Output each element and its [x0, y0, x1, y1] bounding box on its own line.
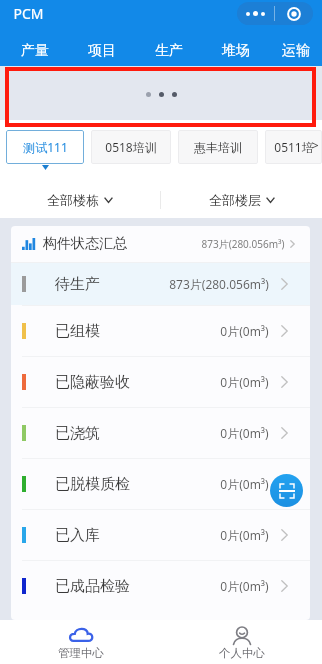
button[interactable]: 管理中心: [0, 620, 161, 664]
button[interactable]: 堆场: [202, 38, 269, 64]
staticText: 项目: [88, 42, 116, 60]
staticText: 个人中心: [219, 646, 265, 660]
staticText: 0片(0m³): [220, 578, 269, 594]
staticText: 0511培: [274, 139, 314, 155]
button[interactable]: 已脱模质检: [11, 459, 310, 509]
staticText: 惠丰培训: [194, 140, 242, 155]
staticText: 0518培训: [105, 139, 157, 155]
staticText: 已成品检验: [55, 577, 130, 596]
staticText: 873片(280.056m³): [201, 237, 285, 251]
staticText: 已入库: [55, 526, 100, 545]
staticText: 全部楼层: [209, 192, 261, 208]
button[interactable]: 已隐蔽验收: [11, 357, 310, 407]
button[interactable]: 个人中心: [161, 620, 322, 664]
button[interactable]: 构件状态汇总: [11, 226, 310, 262]
staticText: 0片(0m³): [220, 374, 269, 390]
button[interactable]: 已组模: [11, 306, 310, 356]
button[interactable]: 已浇筑: [11, 408, 310, 458]
staticText: >: [311, 136, 319, 154]
button[interactable]: 0518培训: [91, 130, 171, 164]
button[interactable]: 产量: [1, 38, 68, 64]
staticText: 已隐蔽验收: [55, 373, 130, 392]
staticText: 0片(0m³): [220, 527, 269, 543]
button[interactable]: 测试111: [6, 130, 84, 164]
button[interactable]: 全部楼层: [161, 182, 322, 218]
staticText: PCM: [13, 4, 44, 23]
button[interactable]: More options: [237, 2, 313, 25]
staticText: 已浇筑: [55, 424, 100, 443]
staticText: 全部楼栋: [47, 192, 99, 208]
staticText: 已脱模质检: [55, 475, 130, 494]
staticText: 待生产: [55, 275, 100, 294]
button[interactable]: 待生产: [11, 263, 310, 305]
button[interactable]: 运输: [269, 38, 322, 64]
staticText: 堆场: [222, 42, 250, 60]
staticText: 管理中心: [58, 646, 104, 660]
staticText: 0片(0m³): [220, 323, 269, 339]
button[interactable]: 惠丰培训: [178, 130, 258, 164]
staticText: 已组模: [55, 322, 100, 341]
staticText: 0片(0m³): [220, 425, 269, 441]
staticText: 运输: [282, 42, 310, 60]
staticText: 0片(0m³): [220, 476, 269, 492]
staticText: 构件状态汇总: [43, 235, 127, 253]
button[interactable]: Scan QR code: [270, 474, 303, 507]
staticText: 873片(280.056m³): [169, 276, 269, 292]
staticText: 产量: [21, 42, 49, 60]
button[interactable]: 生产: [135, 38, 202, 64]
button[interactable]: 已成品检验: [11, 561, 310, 611]
button[interactable]: 0511培: [265, 130, 322, 164]
staticText: 生产: [155, 42, 183, 60]
button[interactable]: 项目: [68, 38, 135, 64]
staticText: 测试111: [23, 139, 68, 155]
button[interactable]: 已入库: [11, 510, 310, 560]
button[interactable]: 全部楼栋: [0, 182, 160, 218]
